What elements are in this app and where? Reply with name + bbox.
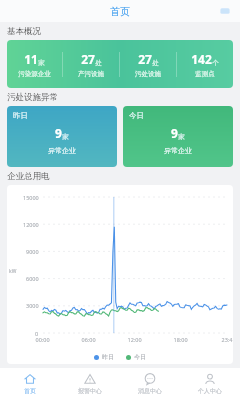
staticText: 企业总用电: [7, 171, 50, 182]
staticText: 污处设施异常: [7, 92, 58, 103]
staticText: 今日: [129, 111, 144, 120]
staticText: 首页: [24, 387, 36, 395]
staticText: 11: [24, 51, 38, 67]
staticText: 个: [212, 59, 219, 67]
staticText: 首页: [110, 5, 130, 18]
staticText: 异常企业: [48, 146, 76, 155]
button[interactable]: 今日: [123, 106, 233, 167]
button[interactable]: 11: [7, 40, 233, 88]
staticText: 报警中心: [78, 387, 102, 395]
staticText: 家: [62, 133, 69, 141]
staticText: 污染源企业: [18, 70, 51, 78]
staticText: 142: [191, 51, 212, 67]
button[interactable]: 首页: [0, 368, 60, 400]
button[interactable]: 个人中心: [180, 368, 240, 400]
staticText: 9: [55, 125, 62, 141]
staticText: 污处设施: [135, 70, 161, 78]
staticText: 27: [138, 51, 152, 67]
staticText: 昨日: [13, 111, 28, 120]
staticText: 27: [81, 51, 95, 67]
staticText: 处: [95, 59, 102, 67]
staticText: 家: [38, 59, 45, 67]
staticText: 产污设施: [78, 70, 104, 78]
staticText: 处: [152, 59, 159, 67]
button[interactable]: 昨日: [7, 106, 117, 167]
staticText: 9: [171, 125, 178, 141]
staticText: 异常企业: [164, 146, 192, 155]
button[interactable]: 扫码: [217, 3, 233, 19]
staticText: 基本概况: [7, 26, 41, 37]
button[interactable]: 报警中心: [60, 368, 120, 400]
staticText: 个人中心: [198, 387, 222, 395]
staticText: 今日: [134, 353, 146, 361]
button[interactable]: 消息中心: [120, 368, 180, 400]
staticText: 家: [178, 133, 185, 141]
staticText: 昨日: [102, 353, 114, 361]
staticText: 消息中心: [138, 387, 162, 395]
staticText: 监测点: [195, 70, 215, 78]
